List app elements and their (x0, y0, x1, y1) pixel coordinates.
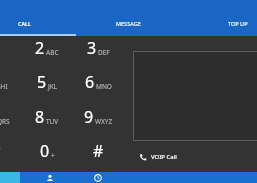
button[interactable]: Contacts (42, 172, 58, 183)
button[interactable]: 8 (22, 105, 72, 129)
button[interactable]: TOP UP (187, 12, 257, 34)
button[interactable]: 9 (73, 105, 123, 129)
staticText: MESSAGE (116, 20, 141, 27)
staticText: PQRS (0, 117, 10, 126)
staticText: MNO (96, 82, 112, 91)
button[interactable]: CALL (0, 12, 75, 34)
staticText: TOP UP (228, 20, 248, 27)
staticText: * (0, 140, 1, 162)
button[interactable]: Recents (90, 172, 106, 183)
button[interactable]: 6 (73, 70, 123, 94)
staticText: 3 (87, 37, 97, 59)
staticText: 5 (37, 71, 47, 93)
staticText: 8 (35, 106, 45, 128)
staticText: GHI (0, 82, 8, 91)
staticText: WXYZ (95, 117, 113, 126)
button[interactable]: VOIP Call (133, 148, 223, 165)
staticText: 0 (40, 140, 50, 162)
staticText: DEF (98, 48, 110, 57)
staticText: 9 (84, 106, 94, 128)
staticText: + (51, 151, 55, 160)
staticText: # (93, 140, 104, 162)
button[interactable]: 3 (73, 36, 123, 60)
staticText: VOIP Call (151, 153, 177, 161)
button[interactable]: 7 (0, 105, 21, 129)
staticText: ABC (46, 48, 59, 57)
button[interactable]: 5 (22, 70, 72, 94)
staticText: TUV (46, 117, 59, 126)
staticText: 6 (85, 71, 95, 93)
button[interactable]: MESSAGE (77, 12, 179, 34)
staticText: 2 (35, 37, 45, 59)
button[interactable]: 0 (22, 139, 72, 163)
staticText: CALL (18, 20, 31, 27)
button[interactable]: # (73, 139, 123, 163)
button[interactable]: 4 (0, 70, 21, 94)
button[interactable]: 2 (22, 36, 72, 60)
staticText: JKL (48, 82, 58, 91)
